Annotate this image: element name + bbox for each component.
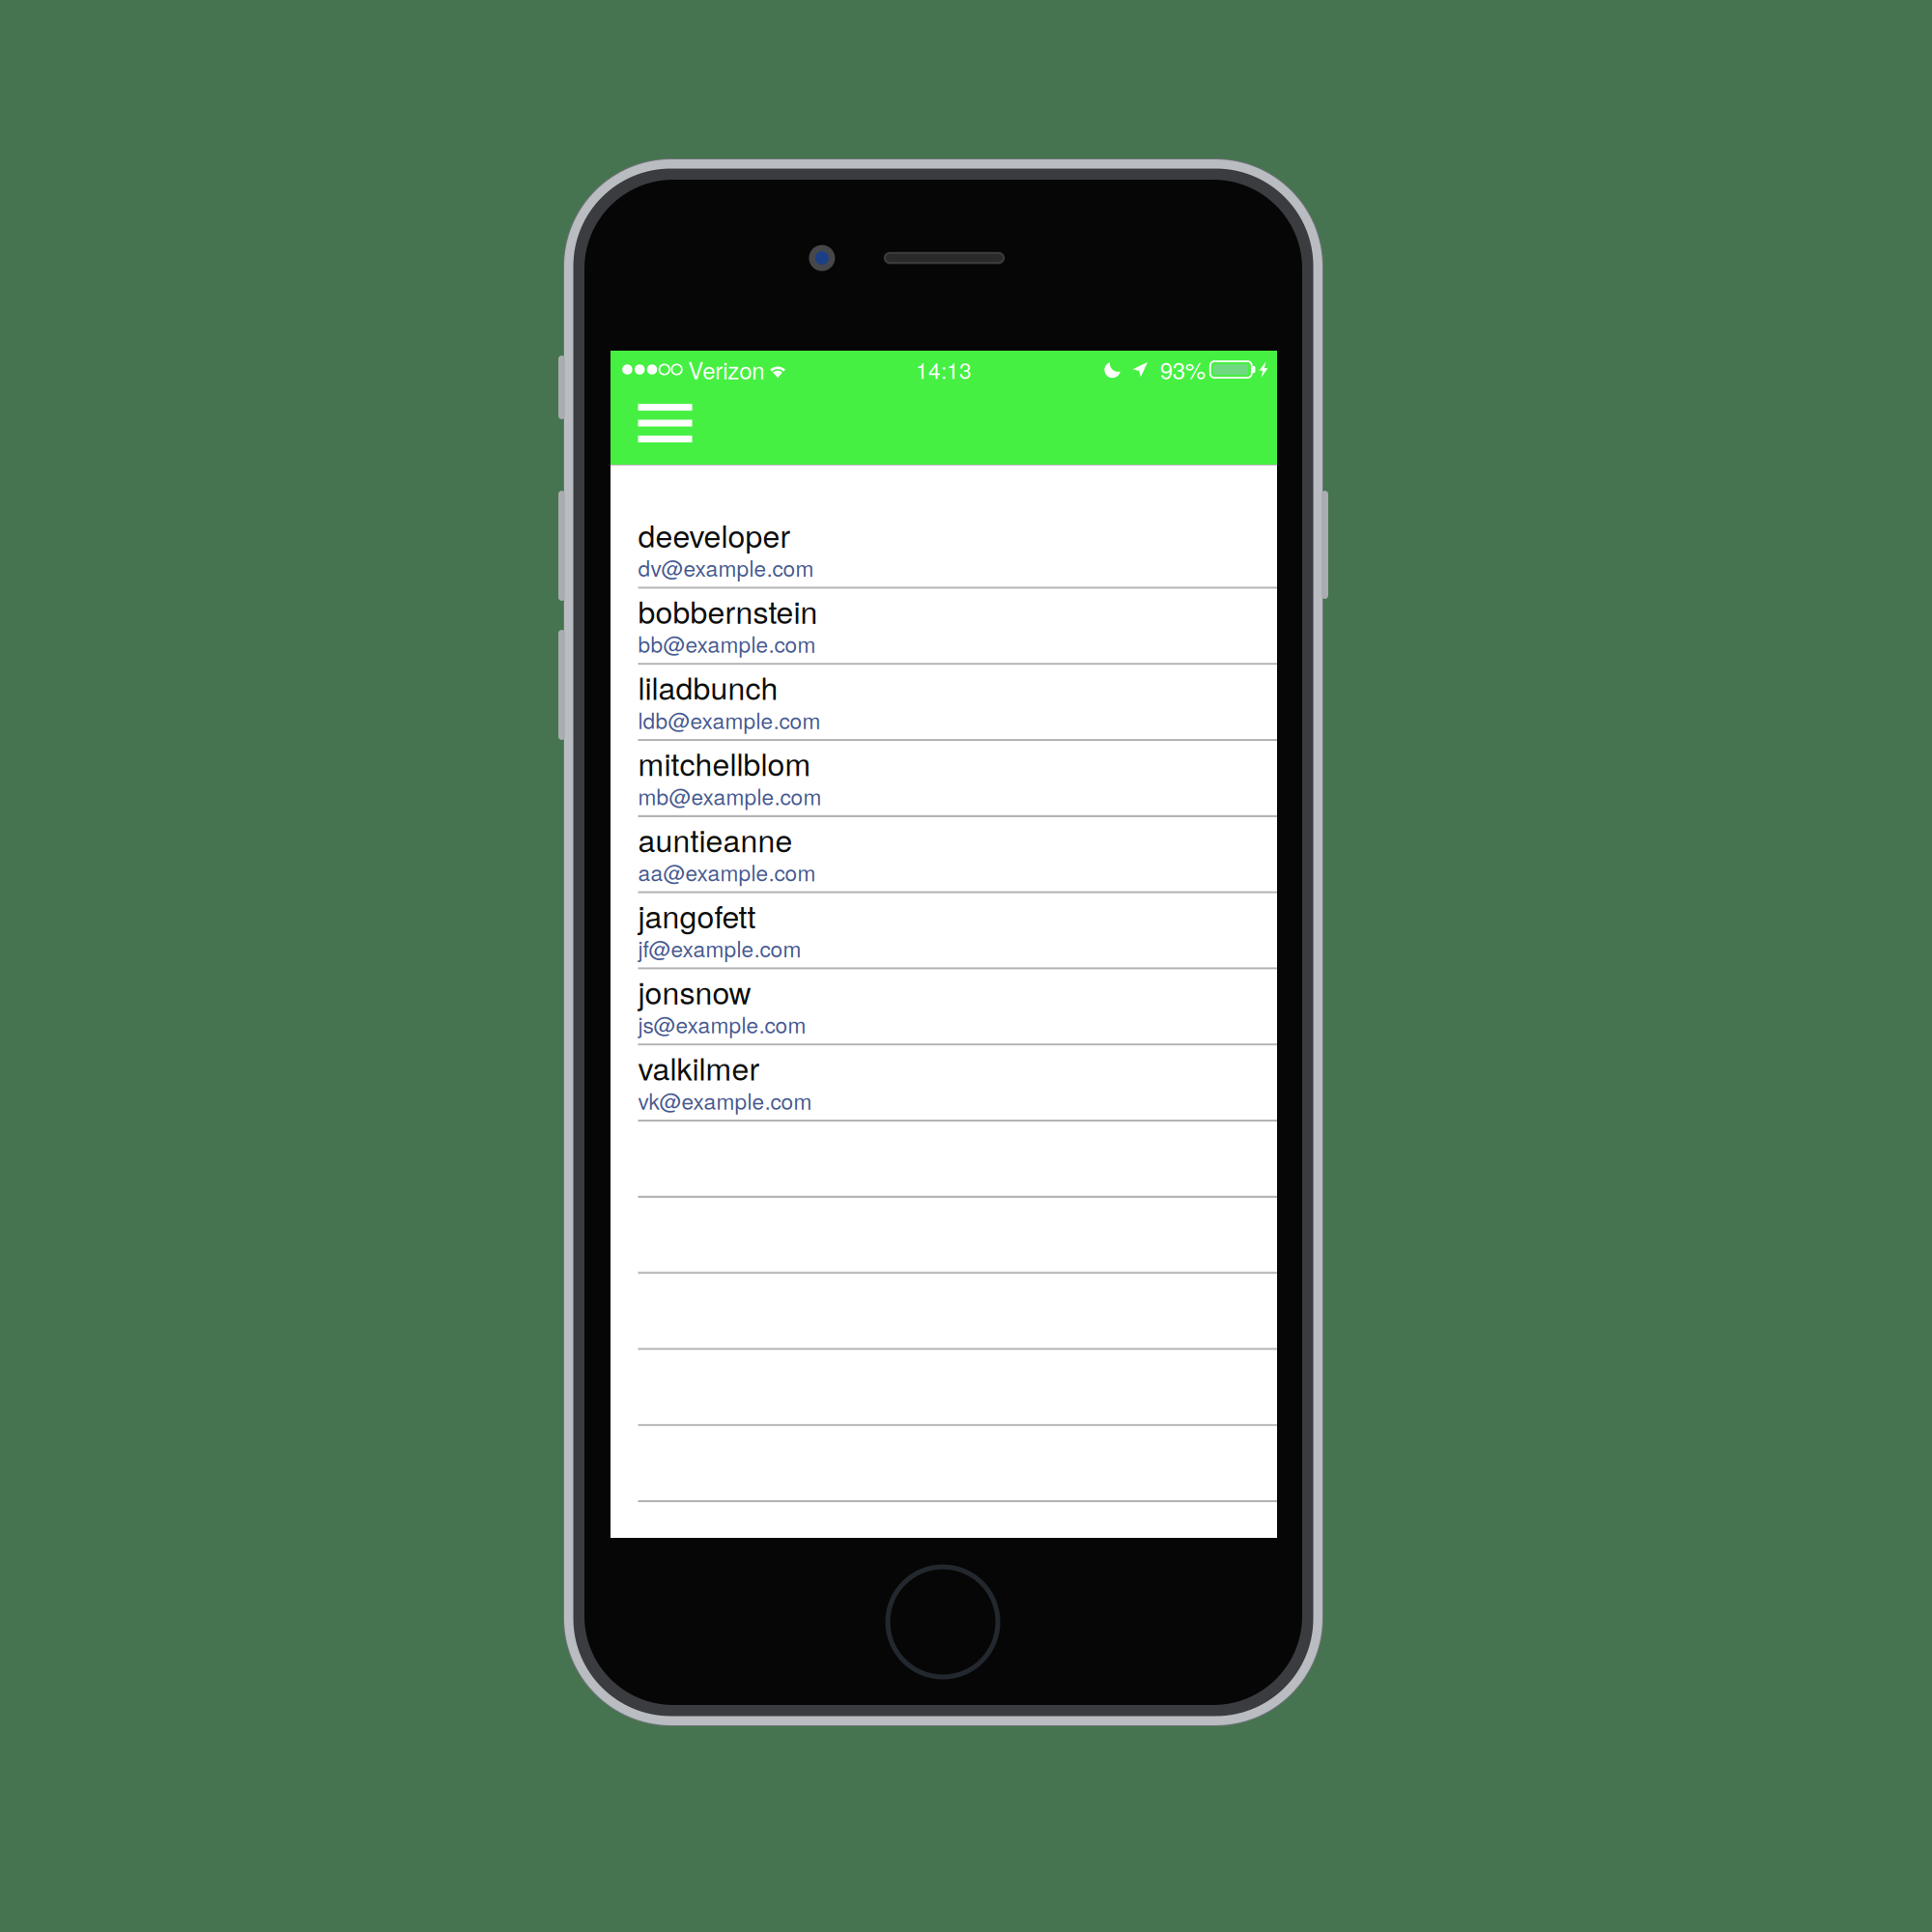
staticText: js@example.com	[638, 1008, 806, 1040]
staticText: liladbunch	[638, 664, 778, 709]
staticText: deeveloper	[638, 512, 791, 556]
button[interactable]: bobbernstein	[611, 589, 1277, 665]
staticText: jf@example.com	[638, 932, 801, 964]
staticText: jangofett	[638, 893, 756, 937]
button[interactable]: mitchellblom	[611, 741, 1277, 817]
button[interactable]: auntieanne	[611, 817, 1277, 893]
button[interactable]: Menu	[611, 388, 720, 464]
button[interactable]: liladbunch	[611, 665, 1277, 741]
button[interactable]: jonsnow	[611, 969, 1277, 1046]
button[interactable]: deeveloper	[611, 513, 1277, 589]
staticText: valkilmer	[638, 1045, 760, 1089]
staticText: aa@example.com	[638, 856, 816, 887]
staticText: bb@example.com	[638, 628, 816, 659]
staticText: dv@example.com	[638, 552, 814, 583]
staticText: ldb@example.com	[638, 704, 821, 735]
staticText: Verizon	[688, 353, 764, 386]
staticText: 14:13	[916, 354, 972, 385]
button[interactable]: jangofett	[611, 893, 1277, 969]
staticText: mb@example.com	[638, 780, 822, 811]
staticText: jonsnow	[638, 969, 751, 1013]
staticText: auntieanne	[638, 817, 793, 861]
button[interactable]: valkilmer	[611, 1046, 1277, 1122]
staticText: 93%	[1160, 353, 1205, 386]
staticText: bobbernstein	[638, 588, 818, 633]
staticText: vk@example.com	[638, 1084, 812, 1116]
staticText: mitchellblom	[638, 741, 811, 785]
